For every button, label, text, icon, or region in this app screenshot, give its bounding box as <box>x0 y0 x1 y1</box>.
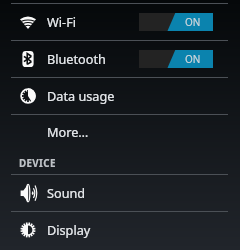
button[interactable]: More… <box>0 114 240 148</box>
button[interactable]: Toggle on <box>139 13 213 31</box>
staticText: ON <box>185 15 201 29</box>
button[interactable]: Data usage <box>0 77 240 114</box>
button[interactable]: Display <box>0 211 240 248</box>
button[interactable]: Toggle on <box>139 50 213 68</box>
staticText: Display <box>47 221 91 238</box>
staticText: Wi-Fi <box>47 13 77 30</box>
button[interactable]: Sound <box>0 174 240 211</box>
staticText: More… <box>47 123 89 140</box>
staticText: Data usage <box>47 87 115 104</box>
staticText: Bluetooth <box>47 50 106 67</box>
button[interactable]: Bluetooth <box>0 40 240 77</box>
staticText: Sound <box>47 184 86 201</box>
staticText: DEVICE <box>19 157 56 170</box>
button[interactable]: Wi-Fi <box>0 3 240 40</box>
staticText: ON <box>185 52 201 66</box>
